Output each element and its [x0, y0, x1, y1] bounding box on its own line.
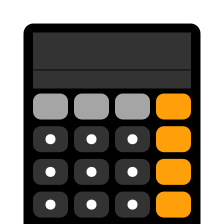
button[interactable]: Subtract — [156, 159, 191, 185]
button[interactable]: Four — [33, 159, 68, 185]
button[interactable]: Nine — [115, 126, 150, 152]
button[interactable]: Five — [74, 159, 109, 185]
button[interactable]: Seven — [33, 126, 68, 152]
button[interactable]: Multiply — [156, 126, 191, 152]
button[interactable]: Percent — [115, 93, 150, 119]
button[interactable]: Six — [115, 159, 150, 185]
button[interactable]: Clear — [33, 93, 68, 119]
button[interactable]: Toggle sign — [74, 93, 109, 119]
button[interactable]: Three — [115, 192, 150, 218]
button[interactable]: Two — [74, 192, 109, 218]
button[interactable]: One — [33, 192, 68, 218]
button[interactable]: Add — [156, 192, 191, 218]
button[interactable]: Divide — [156, 93, 191, 119]
button[interactable]: Eight — [74, 126, 109, 152]
